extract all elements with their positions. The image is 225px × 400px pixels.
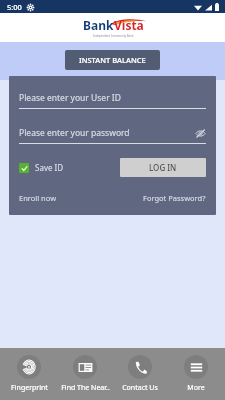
staticText: Please enter your password	[19, 127, 130, 139]
button[interactable]: Fingerprint	[3, 353, 55, 395]
staticText: Contact Us	[122, 383, 158, 393]
button[interactable]: Show password	[194, 127, 206, 139]
staticText: More	[187, 383, 205, 393]
staticText: 5:00	[7, 2, 22, 12]
button[interactable]: Please enter your password	[19, 127, 206, 139]
button[interactable]: Please enter your User ID	[19, 92, 206, 104]
staticText: INSTANT BALANCE	[79, 55, 146, 65]
staticText: LOG IN	[149, 162, 177, 173]
staticText: Bank	[83, 17, 114, 33]
button[interactable]: INSTANT BALANCE	[65, 50, 160, 70]
staticText: Fingerprint	[11, 383, 48, 393]
staticText: Forgot Password?	[143, 193, 206, 203]
button[interactable]: Forgot Password?	[143, 191, 206, 205]
staticText: Save ID	[35, 162, 64, 173]
staticText: Vista	[114, 17, 144, 33]
button[interactable]: LOG IN	[120, 158, 206, 177]
button[interactable]: Find The Near..	[59, 353, 111, 395]
button[interactable]: More	[170, 353, 222, 395]
staticText: Find The Near..	[61, 383, 110, 393]
staticText: Please enter your User ID	[19, 92, 121, 104]
staticText: Independent Community Bank	[93, 34, 134, 38]
button[interactable]: Enroll now	[19, 191, 57, 205]
button[interactable]: Save ID	[19, 159, 64, 176]
button[interactable]: Contact Us	[114, 353, 166, 395]
staticText: Enroll now	[19, 193, 57, 203]
